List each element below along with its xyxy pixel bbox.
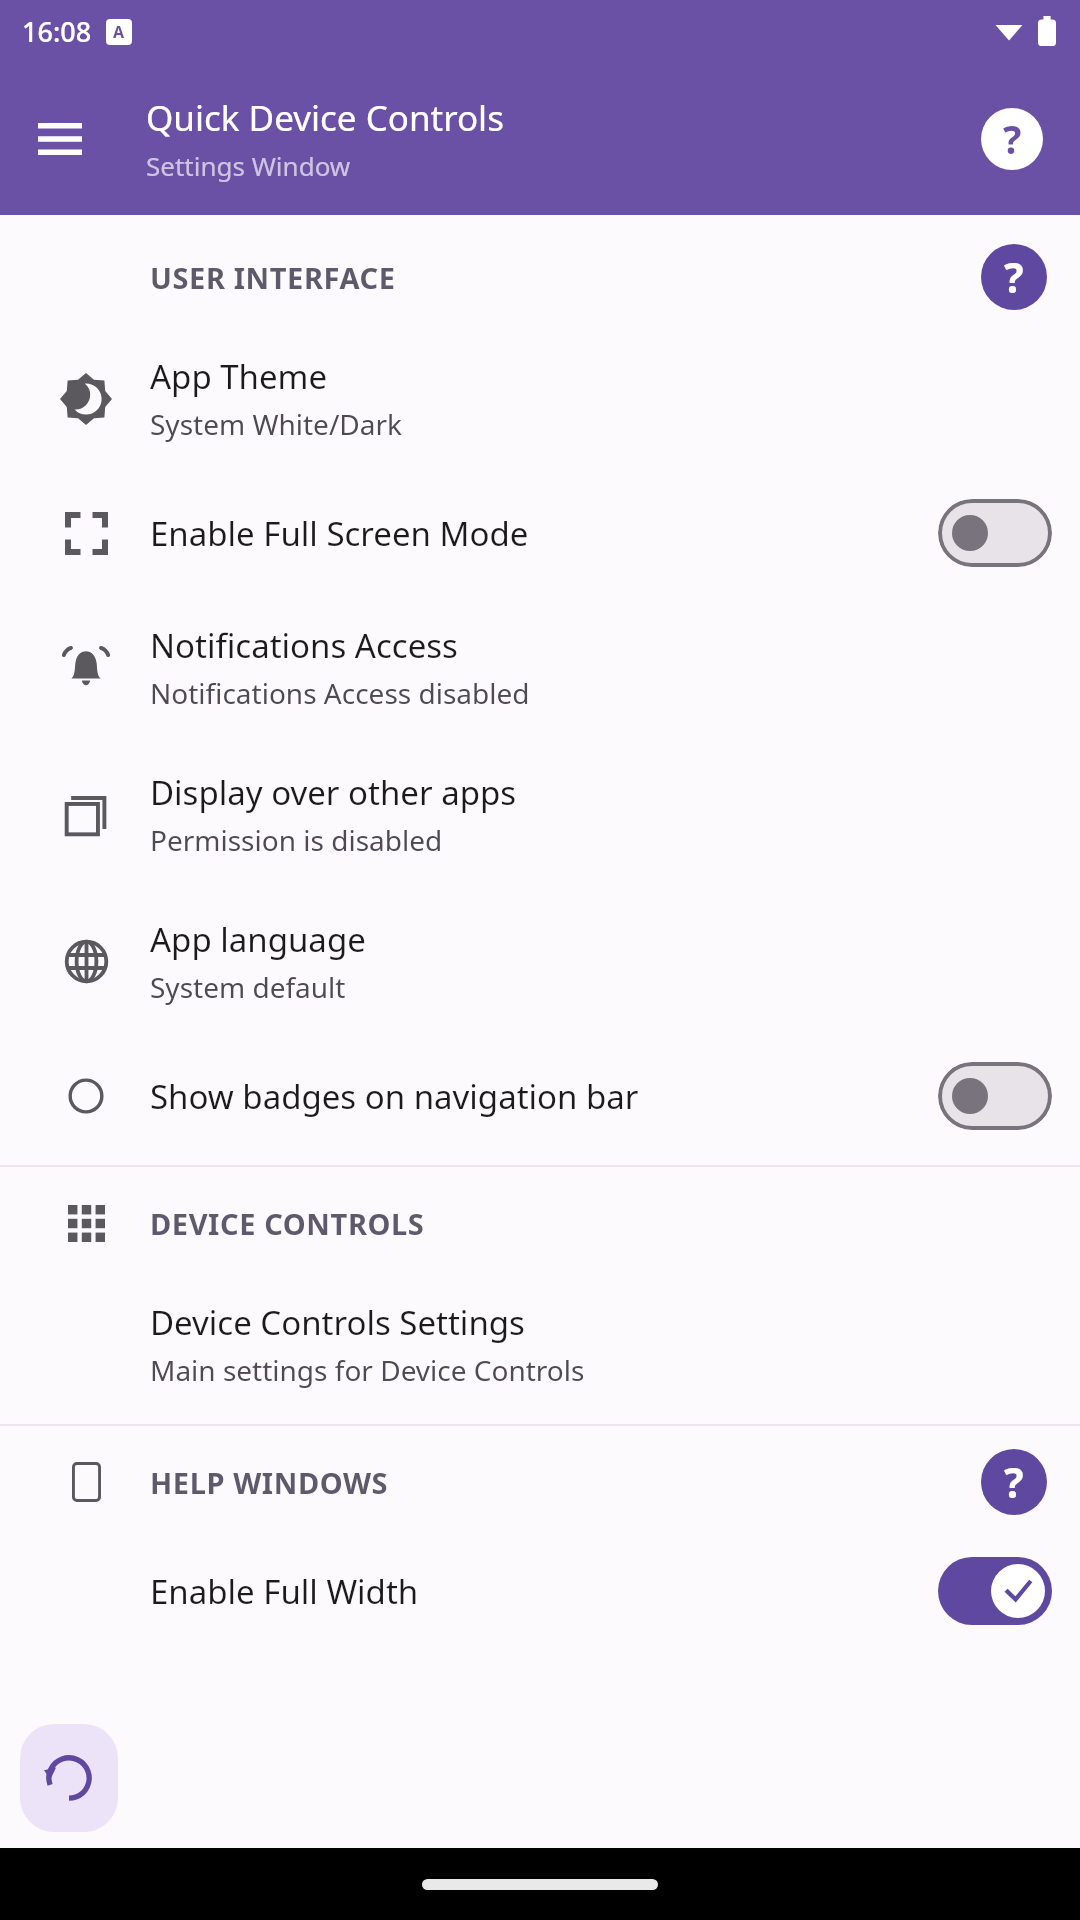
staticText: Settings Window	[146, 148, 351, 183]
button[interactable]: Restore defaults	[20, 1724, 118, 1832]
button[interactable]: Open navigation menu	[22, 101, 98, 177]
button[interactable]: Enable Full Screen Mode	[0, 472, 1080, 594]
button[interactable]: DEVICE CONTROLS	[0, 1175, 1080, 1271]
staticText: ?	[1003, 113, 1022, 165]
button[interactable]: Toggle, off	[938, 1062, 1052, 1130]
button[interactable]: Device Controls Settings	[0, 1271, 1080, 1418]
staticText: System default	[150, 968, 346, 1006]
button[interactable]: Help about HELP WINDOWS	[976, 1444, 1052, 1520]
staticText: Permission is disabled	[150, 821, 443, 859]
staticText: Enable Full Width	[150, 1569, 419, 1614]
button[interactable]: Notifications Access	[0, 594, 1080, 741]
staticText: Show badges on navigation bar	[150, 1074, 639, 1119]
staticText: DEVICE CONTROLS	[150, 1204, 1052, 1243]
staticText: Display over other apps	[150, 770, 517, 815]
staticText: USER INTERFACE	[150, 258, 976, 297]
button[interactable]: Show badges on navigation bar	[0, 1035, 1080, 1157]
staticText: Device Controls Settings	[150, 1300, 525, 1345]
staticText: App Theme	[150, 354, 328, 399]
button[interactable]: Toggle, off	[938, 499, 1052, 567]
staticText: Enable Full Screen Mode	[150, 511, 529, 556]
button[interactable]: Help about USER INTERFACE	[976, 239, 1052, 315]
button[interactable]: Toggle, on	[938, 1557, 1052, 1625]
staticText: HELP WINDOWS	[150, 1463, 976, 1502]
button[interactable]: USER INTERFACE	[0, 229, 1080, 325]
button[interactable]: Display over other apps	[0, 741, 1080, 888]
staticText: Notifications Access disabled	[150, 674, 530, 712]
staticText: App language	[150, 917, 366, 962]
staticText: ?	[1004, 1454, 1024, 1510]
staticText: Quick Device Controls	[146, 94, 504, 142]
staticText: Notifications Access	[150, 623, 458, 668]
staticText: System White/Dark	[150, 405, 402, 443]
staticText: Main settings for Device Controls	[150, 1351, 585, 1389]
staticText: 16:08	[22, 13, 92, 50]
button[interactable]: Help	[972, 99, 1052, 179]
button[interactable]: App Theme	[0, 325, 1080, 472]
staticText: ?	[1004, 249, 1024, 305]
staticText: A	[113, 21, 125, 43]
button[interactable]: Enable Full Width	[0, 1530, 1080, 1652]
button[interactable]: App language	[0, 888, 1080, 1035]
button[interactable]: HELP WINDOWS	[0, 1434, 1080, 1530]
